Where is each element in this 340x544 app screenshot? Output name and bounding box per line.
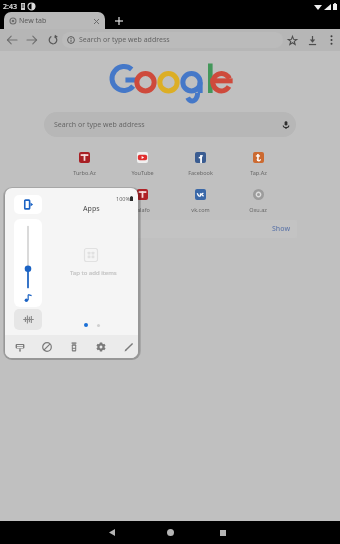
button[interactable]: More options bbox=[324, 33, 338, 47]
button[interactable]: Flashlight bbox=[65, 338, 83, 356]
staticText: Oxu.az bbox=[249, 206, 267, 213]
button[interactable]: Edit bbox=[120, 338, 138, 356]
button[interactable]: Settings bbox=[92, 338, 110, 356]
staticText: YouTube bbox=[131, 169, 154, 176]
staticText: Tap to add items bbox=[70, 269, 117, 277]
staticText: Kinoland bbox=[73, 206, 96, 213]
button[interactable]: Home bbox=[153, 521, 187, 544]
button[interactable]: YouTube bbox=[120, 148, 164, 177]
button[interactable]: Oxu.az bbox=[236, 185, 280, 214]
staticText: New tab bbox=[19, 16, 47, 26]
button[interactable]: Screen bbox=[11, 338, 29, 356]
button[interactable]: Volume bbox=[14, 219, 42, 307]
button[interactable]: Do not disturb bbox=[38, 338, 56, 356]
staticText: vk.com bbox=[191, 206, 210, 213]
button[interactable]: Close tab bbox=[91, 16, 101, 26]
button[interactable]: Recents bbox=[206, 521, 240, 544]
button[interactable]: Show bbox=[270, 223, 293, 235]
button[interactable]: Turbo.Az bbox=[62, 148, 106, 177]
staticText: Facebook bbox=[188, 169, 213, 176]
button[interactable]: Reload bbox=[46, 33, 60, 47]
button[interactable]: Bookmark bbox=[285, 33, 299, 47]
staticText: Search or type web address bbox=[54, 120, 145, 130]
button[interactable]: Forward bbox=[25, 33, 39, 47]
button[interactable]: Download bbox=[305, 33, 319, 47]
staticText: Lalafo bbox=[134, 206, 150, 213]
staticText: Tap.Az bbox=[250, 169, 267, 176]
button[interactable]: Tap.Az bbox=[236, 148, 280, 177]
staticText: Apps bbox=[83, 204, 100, 214]
staticText: Show bbox=[272, 224, 291, 234]
staticText: 100% bbox=[116, 195, 131, 202]
staticText: Search or type web address bbox=[79, 35, 170, 45]
button[interactable]: vk.com bbox=[178, 185, 222, 214]
staticText: 2:43 bbox=[3, 2, 17, 12]
button[interactable]: Kinoland bbox=[62, 185, 106, 214]
button[interactable]: Search or type web address bbox=[62, 32, 283, 48]
button[interactable]: Back bbox=[5, 33, 19, 47]
button[interactable]: Search or type web address bbox=[44, 112, 296, 137]
button[interactable]: Vibrate bbox=[14, 195, 42, 214]
staticText: Turbo.Az bbox=[73, 169, 96, 176]
button[interactable]: Lalafo bbox=[120, 185, 164, 214]
button[interactable]: Sound assistant bbox=[14, 309, 42, 330]
button[interactable]: Facebook bbox=[178, 148, 222, 177]
button[interactable]: Back bbox=[95, 521, 129, 544]
button[interactable]: New tab bbox=[112, 14, 126, 28]
button[interactable]: New tab bbox=[4, 12, 105, 29]
